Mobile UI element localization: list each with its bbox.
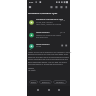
- staticText: Thank you for your interest in our compa…: [28, 51, 72, 53]
- button[interactable]: Message 3: [27, 41, 70, 49]
- staticText: Mohit Sharma: [36, 43, 50, 46]
- button[interactable]: Recents: [56, 87, 61, 92]
- staticText: Complete Management Web: [36, 18, 63, 21]
- staticText: Reply all: [42, 81, 50, 84]
- staticText: with everyone: [36, 36, 48, 38]
- staticText: Jun 18: [60, 31, 65, 33]
- staticText: date mentioned below. You can find the l…: [28, 61, 67, 63]
- staticText: Forward: [56, 81, 64, 84]
- staticText: 5:44: [29, 1, 34, 4]
- staticText: pleased to inform you that you have been…: [28, 53, 69, 55]
- staticText: Thanks for sharing the details: [36, 34, 62, 36]
- button[interactable]: Home: [46, 87, 51, 92]
- staticText: the attachment or follow the instruction…: [28, 63, 63, 65]
- button[interactable]: Message 1: [27, 17, 70, 29]
- staticText: Hi,: [29, 48, 32, 51]
- staticText: Mohit Sharma: [36, 31, 50, 34]
- button[interactable]: Reply: [29, 80, 38, 84]
- staticText: Please complete the online quiz before t…: [28, 58, 68, 60]
- button[interactable]: Message 2: [27, 30, 70, 40]
- staticText: Jun 16: [60, 19, 65, 21]
- staticText: listed for the next round of the selecti…: [28, 56, 69, 58]
- staticText: Hello there, thanks for joining: [36, 23, 62, 25]
- button[interactable]: Back: [35, 87, 40, 92]
- staticText: HR Team: [28, 69, 36, 71]
- staticText: to me: [36, 45, 41, 47]
- button[interactable]: Forward: [53, 80, 67, 84]
- staticText: Complete NOTDijon Quiz: [28, 11, 58, 14]
- staticText: to me, and 3 others: [36, 21, 53, 23]
- staticText: Reply: [31, 81, 36, 84]
- staticText: Thanks,: [28, 67, 35, 69]
- button[interactable]: Reply all: [39, 80, 52, 84]
